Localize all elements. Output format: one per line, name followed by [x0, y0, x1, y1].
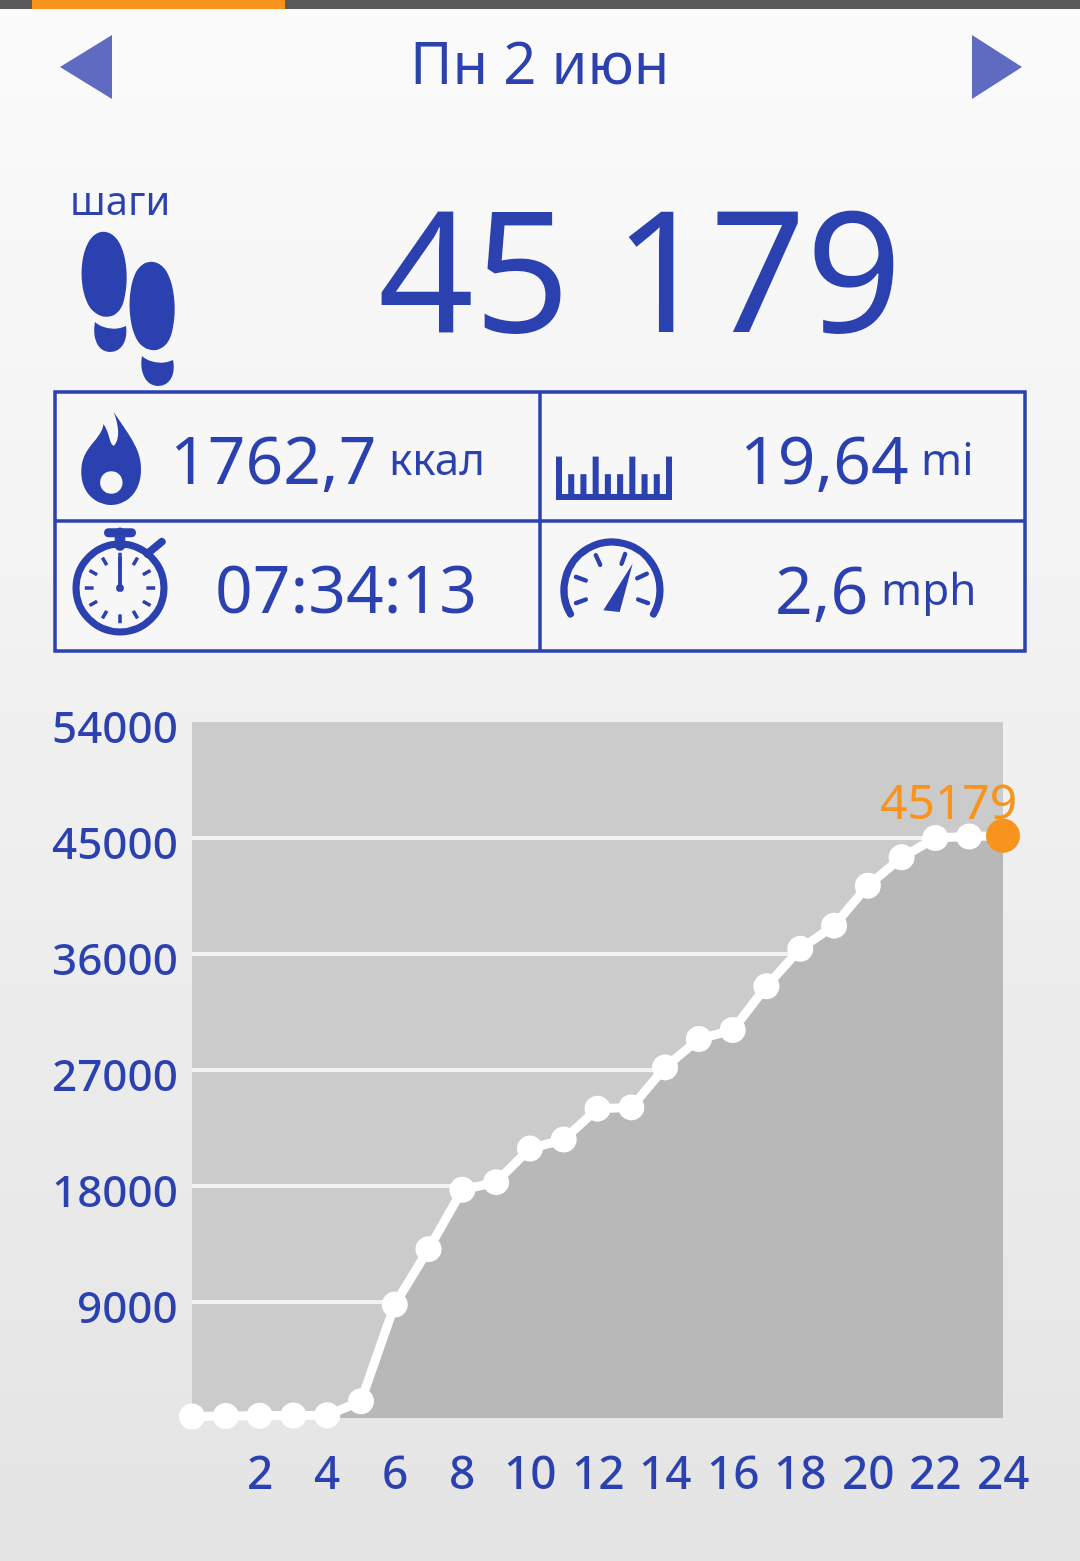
button[interactable]: Next day — [950, 20, 1050, 116]
staticText: 4 — [314, 1440, 341, 1503]
staticText: mph — [881, 558, 977, 618]
staticText: 45179 — [880, 768, 1018, 833]
staticText: 24 — [977, 1440, 1030, 1503]
button[interactable]: 07:34:13 — [215, 542, 477, 632]
staticText: 16 — [707, 1440, 760, 1503]
staticText: 19,64 — [740, 413, 909, 503]
button[interactable]: Пн 2 июн — [410, 22, 670, 101]
staticText: 2 — [247, 1440, 274, 1503]
staticText: 18000 — [52, 1160, 178, 1220]
staticText: 27000 — [52, 1044, 178, 1104]
staticText: 12 — [572, 1440, 625, 1503]
staticText: mi — [921, 428, 974, 488]
staticText: 18 — [774, 1440, 827, 1503]
staticText: ккал — [389, 428, 486, 488]
staticText: 2,6 — [775, 543, 869, 633]
staticText: 54000 — [52, 696, 178, 756]
staticText: 45000 — [52, 812, 178, 872]
staticText: шаги — [70, 172, 171, 226]
staticText: 22 — [909, 1440, 962, 1503]
staticText: 45 179 — [378, 152, 903, 381]
staticText: 1762,7 — [170, 413, 377, 503]
button[interactable]: 1762,7 — [170, 412, 530, 504]
staticText: 20 — [842, 1440, 895, 1503]
staticText: 8 — [449, 1440, 476, 1503]
button[interactable]: Previous day — [40, 20, 140, 116]
button[interactable]: 2,6 — [775, 542, 977, 634]
staticText: 14 — [639, 1440, 692, 1503]
staticText: 9000 — [77, 1276, 178, 1336]
staticText: 6 — [382, 1440, 409, 1503]
button[interactable]: 19,64 — [740, 412, 974, 504]
staticText: 10 — [504, 1440, 557, 1503]
staticText: 36000 — [52, 928, 178, 988]
